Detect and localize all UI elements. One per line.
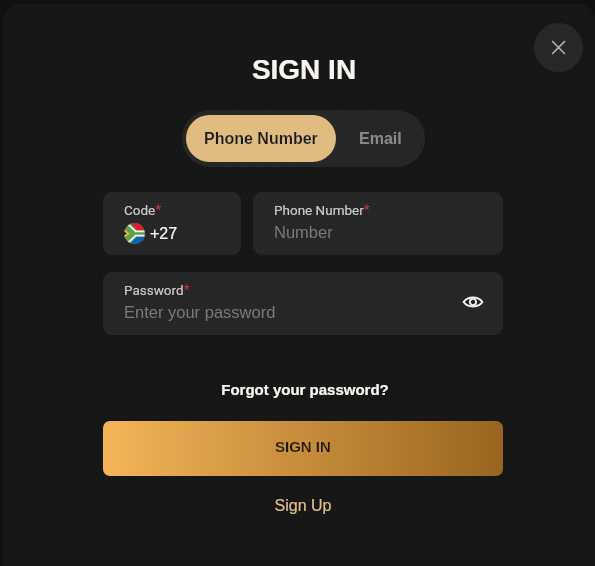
- staticText: Phone Number: [204, 130, 318, 148]
- button[interactable]: Email: [336, 110, 425, 167]
- staticText: Enter your password: [124, 303, 276, 321]
- staticText: Email: [359, 130, 402, 148]
- button[interactable]: Forgot your password?: [9, 381, 595, 398]
- staticText: SIGN IN: [8, 54, 595, 85]
- staticText: +27: [150, 225, 178, 243]
- staticText: Phone Number*: [274, 202, 370, 218]
- staticText: Number: [274, 223, 333, 241]
- button[interactable]: Code*: [103, 192, 241, 255]
- button[interactable]: SIGN IN: [103, 421, 503, 476]
- button[interactable]: Close: [534, 23, 583, 72]
- button[interactable]: Password*: [103, 272, 503, 335]
- button[interactable]: Phone Number: [186, 115, 336, 162]
- staticText: Password*: [124, 282, 190, 298]
- button[interactable]: Show password: [458, 287, 488, 317]
- staticText: Code*: [124, 202, 162, 218]
- staticText: SIGN IN: [275, 438, 331, 455]
- button[interactable]: Sign Up: [7, 497, 595, 515]
- button[interactable]: Phone Number*: [253, 192, 503, 255]
